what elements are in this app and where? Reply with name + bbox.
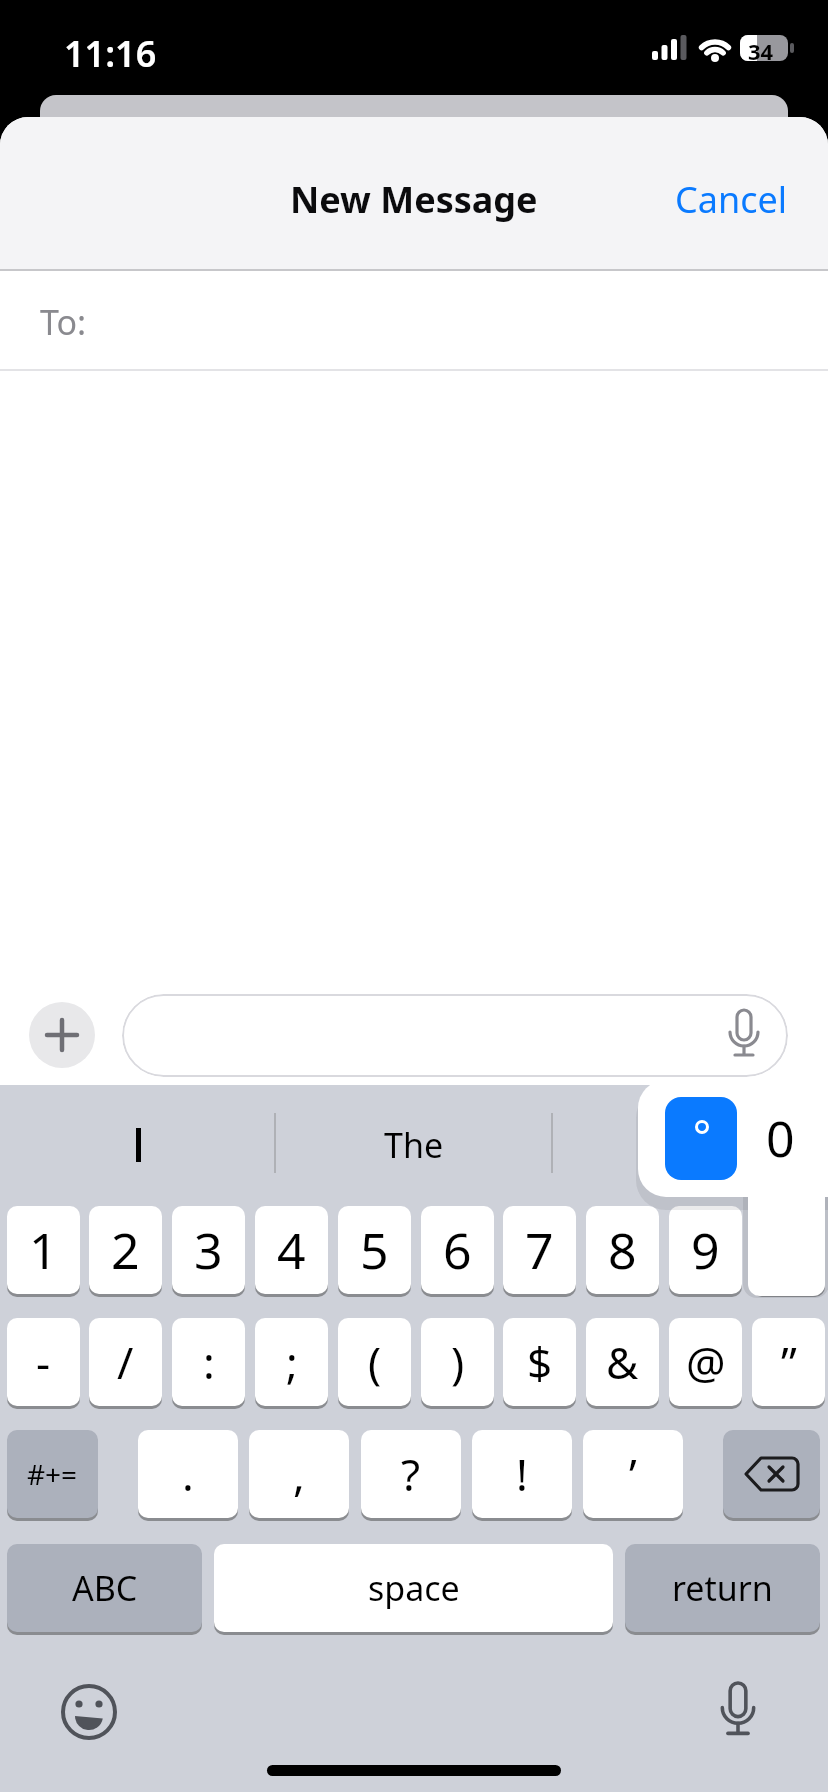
staticText: ) [451, 1332, 465, 1392]
staticText: #+= [27, 1455, 78, 1493]
button[interactable]: #+= [7, 1430, 98, 1518]
staticText: 4 [277, 1216, 306, 1284]
staticText: ; [286, 1332, 298, 1392]
button[interactable]: : [172, 1318, 245, 1406]
staticText: 34 [748, 36, 774, 66]
staticText: ( [368, 1332, 382, 1392]
button[interactable]: ” [752, 1318, 825, 1406]
button[interactable]: ’ [583, 1430, 683, 1518]
staticText: , [293, 1444, 305, 1504]
button[interactable]: , [249, 1430, 349, 1518]
button[interactable]: - [7, 1318, 80, 1406]
button[interactable]: The [276, 1085, 552, 1205]
staticText: ” [781, 1332, 797, 1392]
staticText: The [384, 1122, 444, 1168]
button[interactable]: ABC [7, 1544, 202, 1632]
staticText: $ [527, 1332, 553, 1392]
button[interactable]: 7 [503, 1206, 576, 1294]
staticText: 0 [766, 1104, 795, 1172]
button[interactable]: space [214, 1544, 613, 1632]
staticText: space [368, 1565, 460, 1611]
button[interactable]: ! [472, 1430, 572, 1518]
staticText: ’ [629, 1444, 637, 1504]
staticText: 5 [360, 1216, 389, 1284]
button[interactable]: @ [669, 1318, 742, 1406]
staticText: - [36, 1332, 51, 1392]
button[interactable] [29, 1002, 95, 1068]
button[interactable]: ( [338, 1318, 411, 1406]
button[interactable]: ; [255, 1318, 328, 1406]
staticText: ABC [72, 1565, 138, 1611]
button[interactable]: 2 [89, 1206, 162, 1294]
button[interactable] [0, 1085, 276, 1205]
staticText: New Message [290, 175, 538, 224]
staticText: 2 [111, 1216, 140, 1284]
button[interactable]: return [625, 1544, 820, 1632]
staticText: ? [401, 1444, 421, 1504]
button[interactable]: Cancel [675, 175, 788, 224]
staticText: 11:16 [64, 29, 157, 78]
button[interactable]: ) [421, 1318, 494, 1406]
button[interactable] [122, 994, 788, 1077]
staticText: 1 [29, 1216, 58, 1284]
staticText: / [117, 1332, 134, 1392]
button[interactable]: $ [503, 1318, 576, 1406]
staticText: 8 [608, 1216, 637, 1284]
button[interactable] [752, 1206, 825, 1294]
button[interactable]: . [138, 1430, 238, 1518]
staticText: . [182, 1444, 194, 1504]
button[interactable]: 8 [586, 1206, 659, 1294]
staticText: 3 [194, 1216, 223, 1284]
button[interactable]: 1 [7, 1206, 80, 1294]
staticText: ! [516, 1444, 528, 1504]
button[interactable]: 4 [255, 1206, 328, 1294]
staticText: & [606, 1332, 639, 1392]
staticText: Cancel [675, 175, 788, 224]
button[interactable] [723, 1430, 820, 1518]
staticText: return [672, 1565, 773, 1611]
button[interactable]: 3 [172, 1206, 245, 1294]
button[interactable]: 5 [338, 1206, 411, 1294]
staticText: 6 [443, 1216, 472, 1284]
button[interactable]: 9 [669, 1206, 742, 1294]
button[interactable]: ? [361, 1430, 461, 1518]
button[interactable]: To: [0, 271, 828, 369]
staticText: 9 [691, 1216, 720, 1284]
staticText: 7 [525, 1216, 554, 1284]
staticText: @ [686, 1332, 726, 1392]
staticText: : [203, 1332, 215, 1392]
button[interactable]: & [586, 1318, 659, 1406]
staticText: To: [40, 299, 87, 345]
button[interactable]: / [89, 1318, 162, 1406]
button[interactable]: 6 [421, 1206, 494, 1294]
